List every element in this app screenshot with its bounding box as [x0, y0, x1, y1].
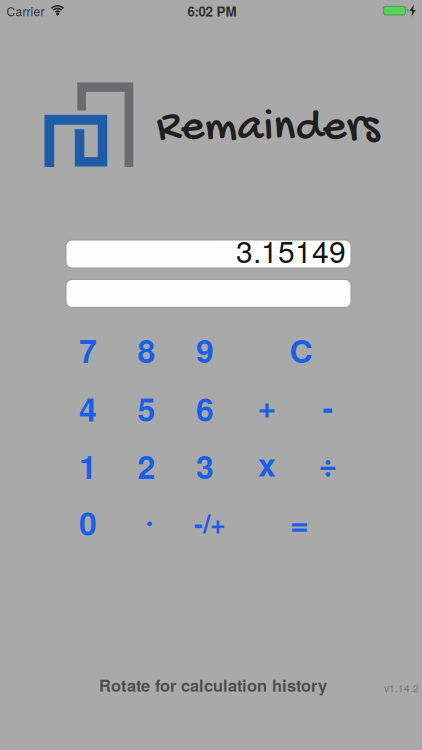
staticText: 3	[196, 443, 214, 489]
staticText: 1	[79, 443, 97, 489]
staticText: 7	[79, 327, 97, 373]
button[interactable]: 3	[177, 444, 233, 488]
staticText: Remainders	[156, 102, 379, 156]
staticText: +	[257, 383, 276, 428]
button[interactable]: C	[273, 328, 329, 372]
button[interactable]: 7	[60, 328, 116, 372]
staticText: ·	[145, 496, 154, 541]
staticText: 2	[137, 443, 155, 489]
staticText: 4	[79, 386, 97, 431]
staticText: Carrier	[6, 2, 44, 20]
button[interactable]: +	[239, 386, 295, 430]
staticText: 6:02 PM	[187, 1, 236, 21]
button[interactable]: 3.15149	[66, 240, 351, 268]
button[interactable]: x	[239, 444, 295, 488]
button[interactable]: 4	[60, 386, 116, 430]
staticText: v1.14.2	[384, 681, 419, 695]
staticText: C	[289, 327, 312, 373]
button[interactable]: -/+	[178, 500, 242, 544]
staticText: -/+	[194, 503, 226, 542]
staticText: 5	[137, 386, 155, 431]
button[interactable]: 6	[177, 386, 233, 430]
staticText: Rotate for calculation history	[99, 673, 327, 697]
staticText: 8	[137, 327, 155, 373]
staticText	[204, 272, 212, 315]
staticText: 9	[196, 327, 214, 373]
button[interactable]: 1	[60, 444, 116, 488]
staticText: x	[258, 441, 276, 486]
staticText: =	[290, 500, 309, 545]
button[interactable]: Second number	[66, 279, 351, 307]
button[interactable]: ·	[121, 500, 177, 544]
button[interactable]: 8	[118, 328, 174, 372]
button[interactable]: 9	[177, 328, 233, 372]
staticText: 6	[196, 386, 214, 431]
staticText: 3.15149	[236, 228, 346, 271]
button[interactable]: 2	[118, 444, 174, 488]
staticText: 0	[79, 500, 97, 545]
staticText: ÷	[318, 441, 337, 487]
button[interactable]: ÷	[300, 444, 356, 488]
button[interactable]: -	[300, 386, 356, 430]
staticText: -	[322, 384, 333, 429]
button[interactable]: =	[271, 500, 327, 544]
button[interactable]: 5	[118, 386, 174, 430]
button[interactable]: 0	[60, 500, 116, 544]
